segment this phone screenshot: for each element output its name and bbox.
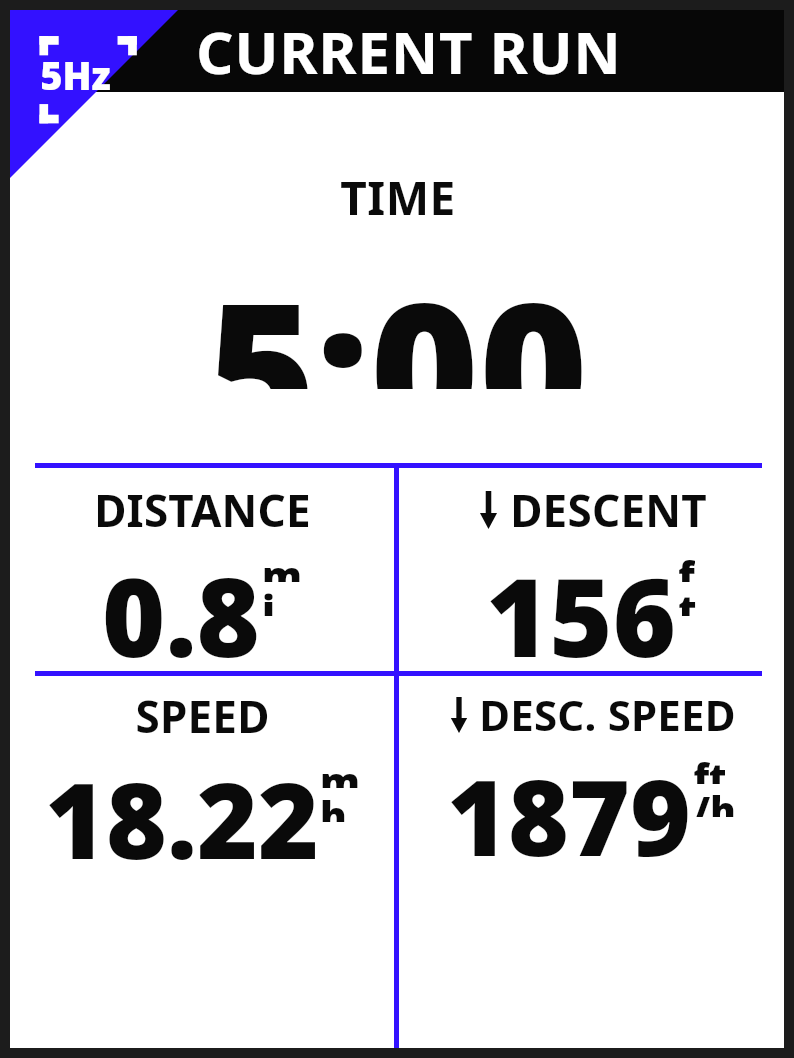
staticText: 18.22 xyxy=(45,748,319,890)
staticText: CURRENT RUN xyxy=(196,12,622,91)
staticText: 5:00 xyxy=(207,239,588,389)
staticText: DISTANCE xyxy=(94,480,311,540)
staticText: /h xyxy=(693,784,736,817)
staticText: 1879 xyxy=(447,745,691,887)
staticText: 156 xyxy=(486,542,676,671)
button[interactable]: GPS sample rate 5 Hz xyxy=(10,10,178,178)
button[interactable]: TIME xyxy=(10,92,784,463)
button[interactable]: SPEED xyxy=(10,676,394,1048)
button[interactable]: DESCENT xyxy=(399,468,784,671)
staticText: i xyxy=(262,582,275,616)
staticText: TIME xyxy=(340,166,456,229)
button[interactable]: DISTANCE xyxy=(10,468,394,671)
staticText: SPEED xyxy=(135,686,270,746)
staticText: ft xyxy=(693,751,727,784)
staticText: 5Hz xyxy=(40,49,111,101)
staticText: m xyxy=(262,548,302,582)
button[interactable]: DESC. SPEED xyxy=(399,676,784,1048)
staticText: 0.8 xyxy=(102,542,260,671)
staticText: t xyxy=(678,582,697,616)
staticText: DESCENT xyxy=(510,480,707,540)
button[interactable]: CURRENT RUN xyxy=(10,10,784,92)
staticText: h xyxy=(320,788,347,822)
staticText: DESC. SPEED xyxy=(479,686,736,743)
staticText: m xyxy=(320,754,360,788)
staticText: f xyxy=(678,548,695,582)
